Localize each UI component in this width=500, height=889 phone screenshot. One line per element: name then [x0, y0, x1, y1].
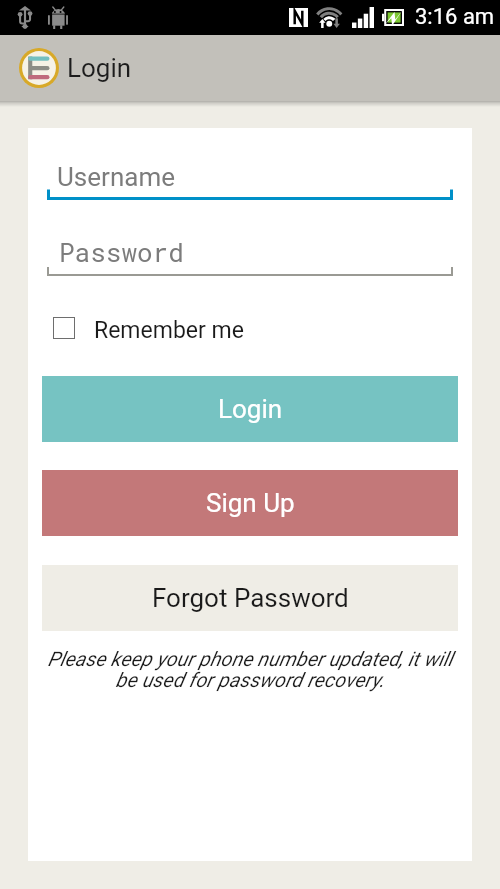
staticText: Password [59, 235, 184, 269]
staticText: Login [67, 53, 132, 83]
staticText: Username [57, 162, 175, 192]
staticText: 3:16 am [415, 4, 495, 30]
other: NFC [289, 8, 308, 27]
staticText: Forgot Password [152, 583, 349, 613]
staticText: Login [218, 394, 283, 424]
staticText: Sign Up [206, 488, 295, 518]
other: Android [48, 7, 68, 29]
staticText: Remember me [94, 317, 244, 344]
other: Signal strength [352, 7, 374, 28]
button[interactable]: Sign Up [42, 470, 458, 536]
other: Battery charging [382, 9, 404, 26]
other: USB connected [18, 6, 32, 29]
button[interactable]: Username [57, 162, 357, 198]
button[interactable]: Login [42, 376, 458, 442]
button[interactable]: Password [59, 235, 359, 271]
staticText: Please keep your phone number updated, i… [42, 647, 458, 692]
other: Wi-Fi [318, 6, 341, 28]
button[interactable]: Remember me [53, 313, 253, 343]
button[interactable]: Forgot Password [42, 565, 458, 631]
